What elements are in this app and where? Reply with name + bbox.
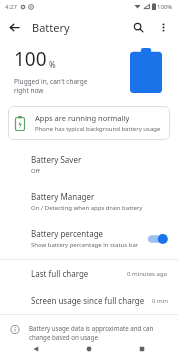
button[interactable]: Search (125, 14, 151, 40)
button[interactable]: Recent apps (125, 342, 159, 355)
button[interactable]: Last full charge (0, 260, 178, 287)
staticText: On / Detecting when apps drain battery (31, 204, 143, 212)
staticText: Screen usage since full charge (31, 295, 145, 306)
staticText: Phone has typical background battery usa… (35, 125, 161, 133)
other: Battery level (130, 48, 162, 93)
staticText: 0 min (152, 297, 168, 305)
button[interactable]: More options (151, 15, 175, 39)
staticText: Battery (32, 20, 70, 35)
button[interactable]: Apps are running normally (8, 106, 170, 140)
staticText: Battery percentage (31, 228, 104, 239)
staticText: Show battery percentage in status bar (31, 241, 139, 249)
button[interactable]: Battery Manager (0, 183, 178, 220)
staticText: 4:27 (5, 3, 17, 11)
button[interactable]: Home (72, 342, 106, 355)
staticText: Battery Manager (31, 191, 95, 202)
button[interactable]: Battery percentage (0, 220, 178, 257)
staticText: Last full charge (31, 268, 89, 279)
staticText: Off (31, 167, 40, 175)
button[interactable]: Battery Saver (0, 146, 178, 183)
staticText: Apps are running normally (35, 113, 130, 123)
button[interactable]: Back (0, 13, 28, 41)
staticText: Battery usage data is approximate and ca… (29, 324, 154, 342)
staticText: % (49, 59, 56, 70)
other: Battery percentage toggle (148, 232, 170, 246)
staticText: Plugged in, can't charge right now (14, 77, 88, 95)
staticText: 100% (157, 3, 173, 11)
staticText: 0 minutes ago (127, 270, 168, 278)
staticText: 100 (14, 46, 47, 72)
button[interactable]: Screen usage since full charge (0, 287, 178, 314)
button[interactable]: Back (19, 342, 53, 355)
staticText: Battery Saver (31, 154, 82, 165)
